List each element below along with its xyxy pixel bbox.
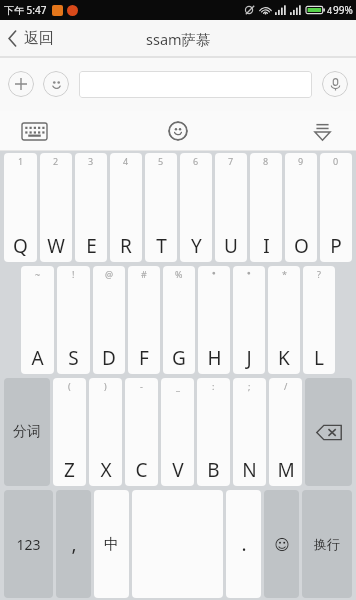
staticText: ? xyxy=(317,268,321,280)
button[interactable]: 1 xyxy=(4,153,37,262)
staticText: K xyxy=(278,345,290,371)
staticText: % xyxy=(175,268,183,280)
staticText: B xyxy=(207,457,220,483)
button[interactable]: Voice input xyxy=(322,71,348,97)
staticText: 4 xyxy=(123,155,129,167)
staticText: R xyxy=(120,233,132,259)
staticText: A xyxy=(31,345,44,371)
staticText: G xyxy=(172,345,186,371)
staticText: 1 xyxy=(18,155,24,167)
button[interactable]: ! xyxy=(57,266,90,374)
staticText: 返回 xyxy=(24,29,54,48)
staticText: ~ xyxy=(35,268,41,280)
staticText: V xyxy=(172,457,184,483)
staticText: 99% xyxy=(333,3,353,17)
staticText: X xyxy=(100,457,112,483)
staticText: N xyxy=(242,457,257,483)
button[interactable]: 9 xyxy=(285,153,317,262)
staticText: E xyxy=(86,233,97,259)
button[interactable]: 2 xyxy=(40,153,72,262)
button[interactable]: * xyxy=(268,266,300,374)
button[interactable]: ~ xyxy=(21,266,54,374)
staticText: ; xyxy=(248,380,251,392)
staticText: @ xyxy=(105,268,114,280)
staticText: 7 xyxy=(228,155,234,167)
staticText: 123 xyxy=(16,535,41,554)
button[interactable]: ; xyxy=(233,378,266,486)
staticText: 8 xyxy=(263,155,269,167)
staticText: J xyxy=(246,345,252,371)
button[interactable]: 5 xyxy=(145,153,177,262)
button[interactable]: . xyxy=(226,490,261,598)
button[interactable]: 123 xyxy=(4,490,53,598)
staticText: 分词 xyxy=(13,423,41,441)
staticText: Q xyxy=(13,233,28,259)
button[interactable]: 中 xyxy=(94,490,129,598)
button[interactable]: # xyxy=(128,266,160,374)
button[interactable]: % xyxy=(163,266,195,374)
staticText: 4 xyxy=(327,4,333,16)
staticText: / xyxy=(284,380,288,392)
staticText: ! xyxy=(72,268,75,280)
button[interactable]: ☺ xyxy=(264,490,299,598)
staticText: ∙ xyxy=(211,268,217,278)
staticText: C xyxy=(135,457,148,483)
staticText: U xyxy=(224,233,238,259)
staticText: M xyxy=(277,457,295,483)
staticText: # xyxy=(141,268,147,280)
button[interactable]: Emoji keyboard xyxy=(160,113,196,149)
staticText: P xyxy=(330,233,342,259)
staticText: O xyxy=(294,233,309,259)
staticText: 中 xyxy=(104,535,119,554)
staticText: 下午 5:47 xyxy=(4,3,47,17)
button[interactable]: : xyxy=(197,378,230,486)
staticText: L xyxy=(314,345,324,371)
button[interactable]: ? xyxy=(303,266,335,374)
staticText: 6 xyxy=(193,155,199,167)
button[interactable]: 4 xyxy=(110,153,142,262)
staticText: 3 xyxy=(88,155,94,167)
button[interactable]: 3 xyxy=(75,153,107,262)
staticText: W xyxy=(47,233,65,259)
staticText: 9 xyxy=(298,155,304,167)
button[interactable]: ∙ xyxy=(233,266,265,374)
staticText: . xyxy=(241,531,247,557)
button[interactable]: Add xyxy=(8,71,34,97)
staticText: ∙ xyxy=(246,268,252,278)
button[interactable]: Backspace xyxy=(305,378,352,486)
button[interactable]: Keyboard xyxy=(16,113,52,149)
button[interactable]: 6 xyxy=(180,153,212,262)
button[interactable]: 换行 xyxy=(302,490,352,598)
button[interactable]: Hide keyboard xyxy=(304,113,340,149)
staticText: Z xyxy=(64,457,75,483)
button[interactable] xyxy=(79,71,312,98)
staticText: ssam萨慕 xyxy=(146,29,211,49)
button[interactable]: ∙ xyxy=(198,266,230,374)
staticText: H xyxy=(207,345,222,371)
staticText: I xyxy=(263,233,270,259)
staticText: Y xyxy=(191,233,202,259)
staticText: ( xyxy=(68,380,71,392)
button[interactable]: Emoji xyxy=(43,71,69,97)
staticText: T xyxy=(156,233,167,259)
button[interactable]: 0 xyxy=(320,153,352,262)
button[interactable]: ( xyxy=(53,378,86,486)
button[interactable]: ) xyxy=(89,378,122,486)
staticText: ☺ xyxy=(274,536,290,553)
staticText: : xyxy=(212,380,215,392)
button[interactable]: 7 xyxy=(215,153,247,262)
button[interactable]: / xyxy=(269,378,302,486)
staticText: 2 xyxy=(53,155,59,167)
button[interactable]: 返回 xyxy=(0,20,64,57)
staticText: 0 xyxy=(333,155,339,167)
button[interactable]: - xyxy=(125,378,158,486)
button[interactable]: 分词 xyxy=(4,378,50,486)
button[interactable]: _ xyxy=(161,378,194,486)
staticText: _ xyxy=(176,380,180,392)
button[interactable]: @ xyxy=(93,266,125,374)
staticText: F xyxy=(139,345,149,371)
button[interactable]: , xyxy=(56,490,91,598)
staticText: * xyxy=(282,268,287,280)
button[interactable]: 8 xyxy=(250,153,282,262)
